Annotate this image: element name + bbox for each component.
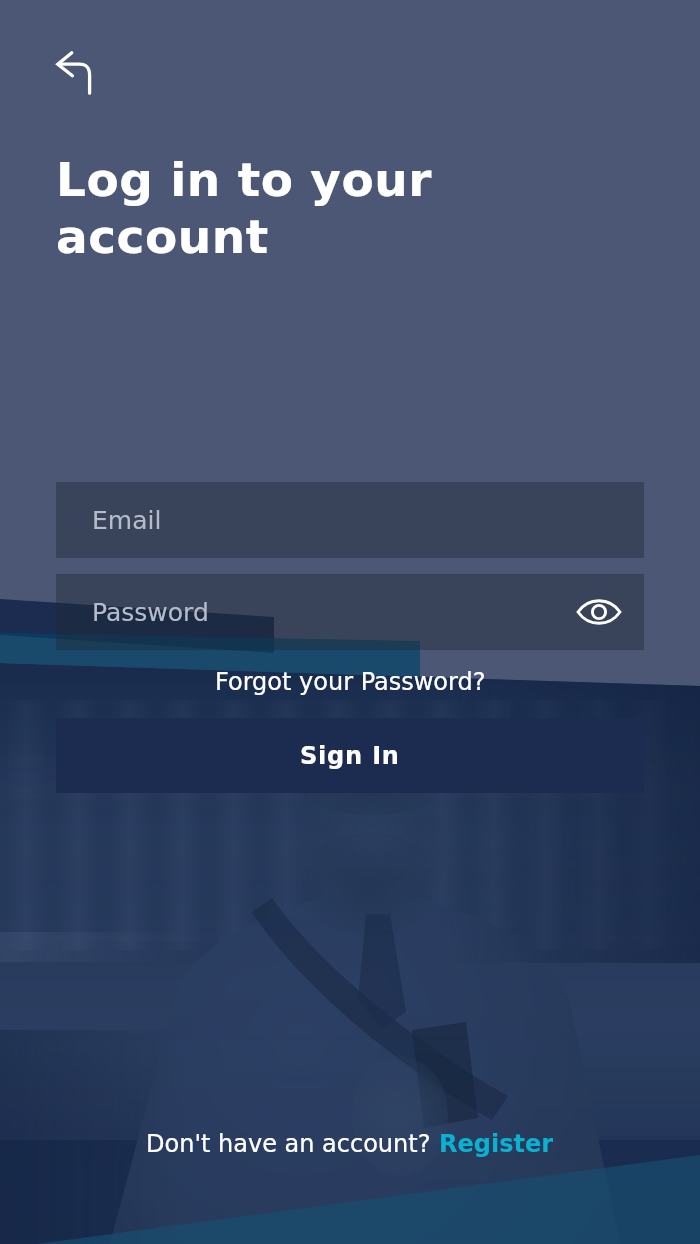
staticText: Password bbox=[92, 598, 209, 627]
button[interactable]: Forgot your Password? bbox=[215, 668, 486, 696]
staticText: Email bbox=[92, 506, 162, 535]
button[interactable]: Register bbox=[439, 1130, 554, 1158]
button[interactable]: Sign In bbox=[56, 718, 644, 793]
button[interactable]: Show password bbox=[573, 586, 625, 638]
staticText: Don't have an account? bbox=[146, 1130, 439, 1158]
staticText: Log in to your account bbox=[56, 152, 432, 264]
button[interactable]: Password bbox=[56, 574, 644, 650]
button[interactable]: Back bbox=[46, 41, 102, 97]
staticText: Sign In bbox=[300, 742, 400, 770]
button[interactable]: Email bbox=[56, 482, 644, 558]
